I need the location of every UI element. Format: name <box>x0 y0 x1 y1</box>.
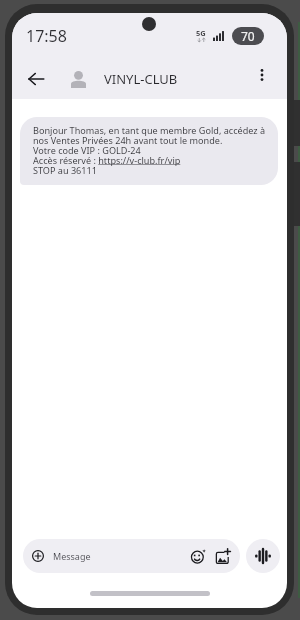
staticText: 70 <box>241 28 255 44</box>
staticText: 17:58 <box>26 25 67 47</box>
button[interactable]: Bonjour Thomas, en tant que membre Gold,… <box>20 117 278 185</box>
staticText: Message <box>53 550 91 562</box>
button[interactable]: Message <box>23 539 240 573</box>
button[interactable]: Attach image <box>211 545 233 567</box>
button[interactable]: Emoji <box>187 545 209 567</box>
staticText: 5G <box>196 28 206 38</box>
button[interactable]: Voice message <box>246 539 280 573</box>
staticText: VINYL-CLUB <box>104 70 178 88</box>
staticText: Bonjour Thomas, en tant que membre Gold,… <box>33 124 269 177</box>
button[interactable]: Back <box>20 63 52 95</box>
button[interactable]: More options <box>245 62 279 96</box>
